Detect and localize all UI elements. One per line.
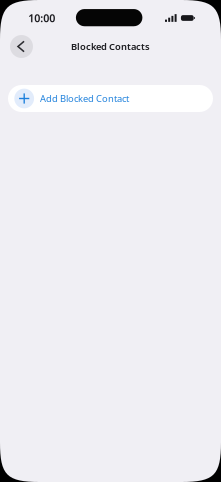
- staticText: 10:00: [28, 11, 55, 25]
- button[interactable]: Back: [10, 35, 33, 58]
- staticText: Add Blocked Contact: [40, 92, 129, 105]
- staticText: Blocked Contacts: [71, 40, 150, 53]
- button[interactable]: Add Blocked Contact: [8, 85, 213, 112]
